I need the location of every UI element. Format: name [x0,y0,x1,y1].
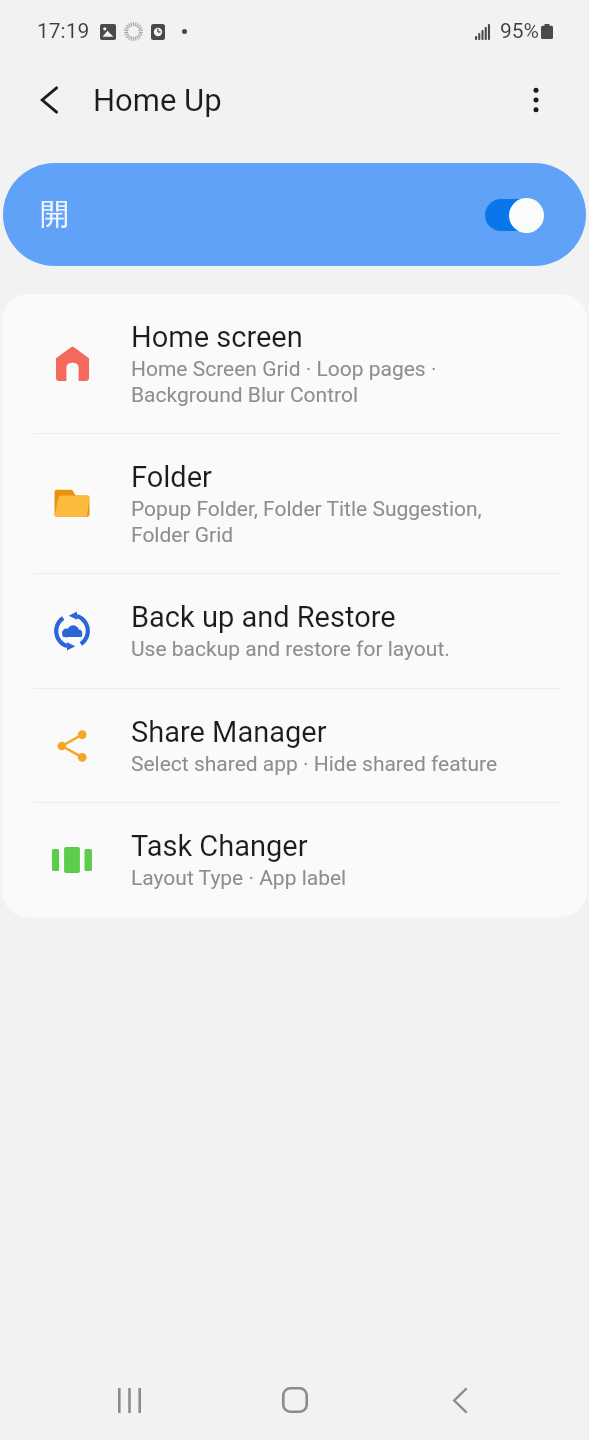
staticText: Folder [131,460,212,494]
staticText: Home Screen Grid · Loop pages · Backgrou… [131,357,437,407]
button[interactable]: Share Manager [2,689,587,802]
staticText: Back up and Restore [131,600,396,634]
staticText: Home screen [131,320,303,354]
button[interactable]: Back [420,1360,500,1440]
staticText: Home Up [93,82,222,118]
staticText: Popup Folder, Folder Title Suggestion, F… [131,497,482,547]
staticText: Share Manager [131,715,327,749]
staticText: Layout Type · App label [131,866,347,891]
button[interactable]: More options [508,72,564,128]
button[interactable]: Folder [2,434,587,573]
button[interactable]: Home Up on [485,197,544,233]
button[interactable]: 開 [3,163,586,266]
staticText: Select shared app · Hide shared feature [131,752,498,777]
button[interactable]: Recent apps [89,1360,169,1440]
staticText: Task Changer [131,829,308,863]
staticText: Use backup and restore for layout. [131,637,450,662]
staticText: 開 [40,196,69,233]
button[interactable]: Navigate up [22,72,78,128]
button[interactable]: Back up and Restore [2,574,587,688]
button[interactable]: Home screen [2,294,587,433]
staticText: 95% [500,19,539,44]
button[interactable]: Task Changer [2,803,587,917]
button[interactable]: Home [255,1360,335,1440]
staticText: 17:19 [37,19,90,44]
